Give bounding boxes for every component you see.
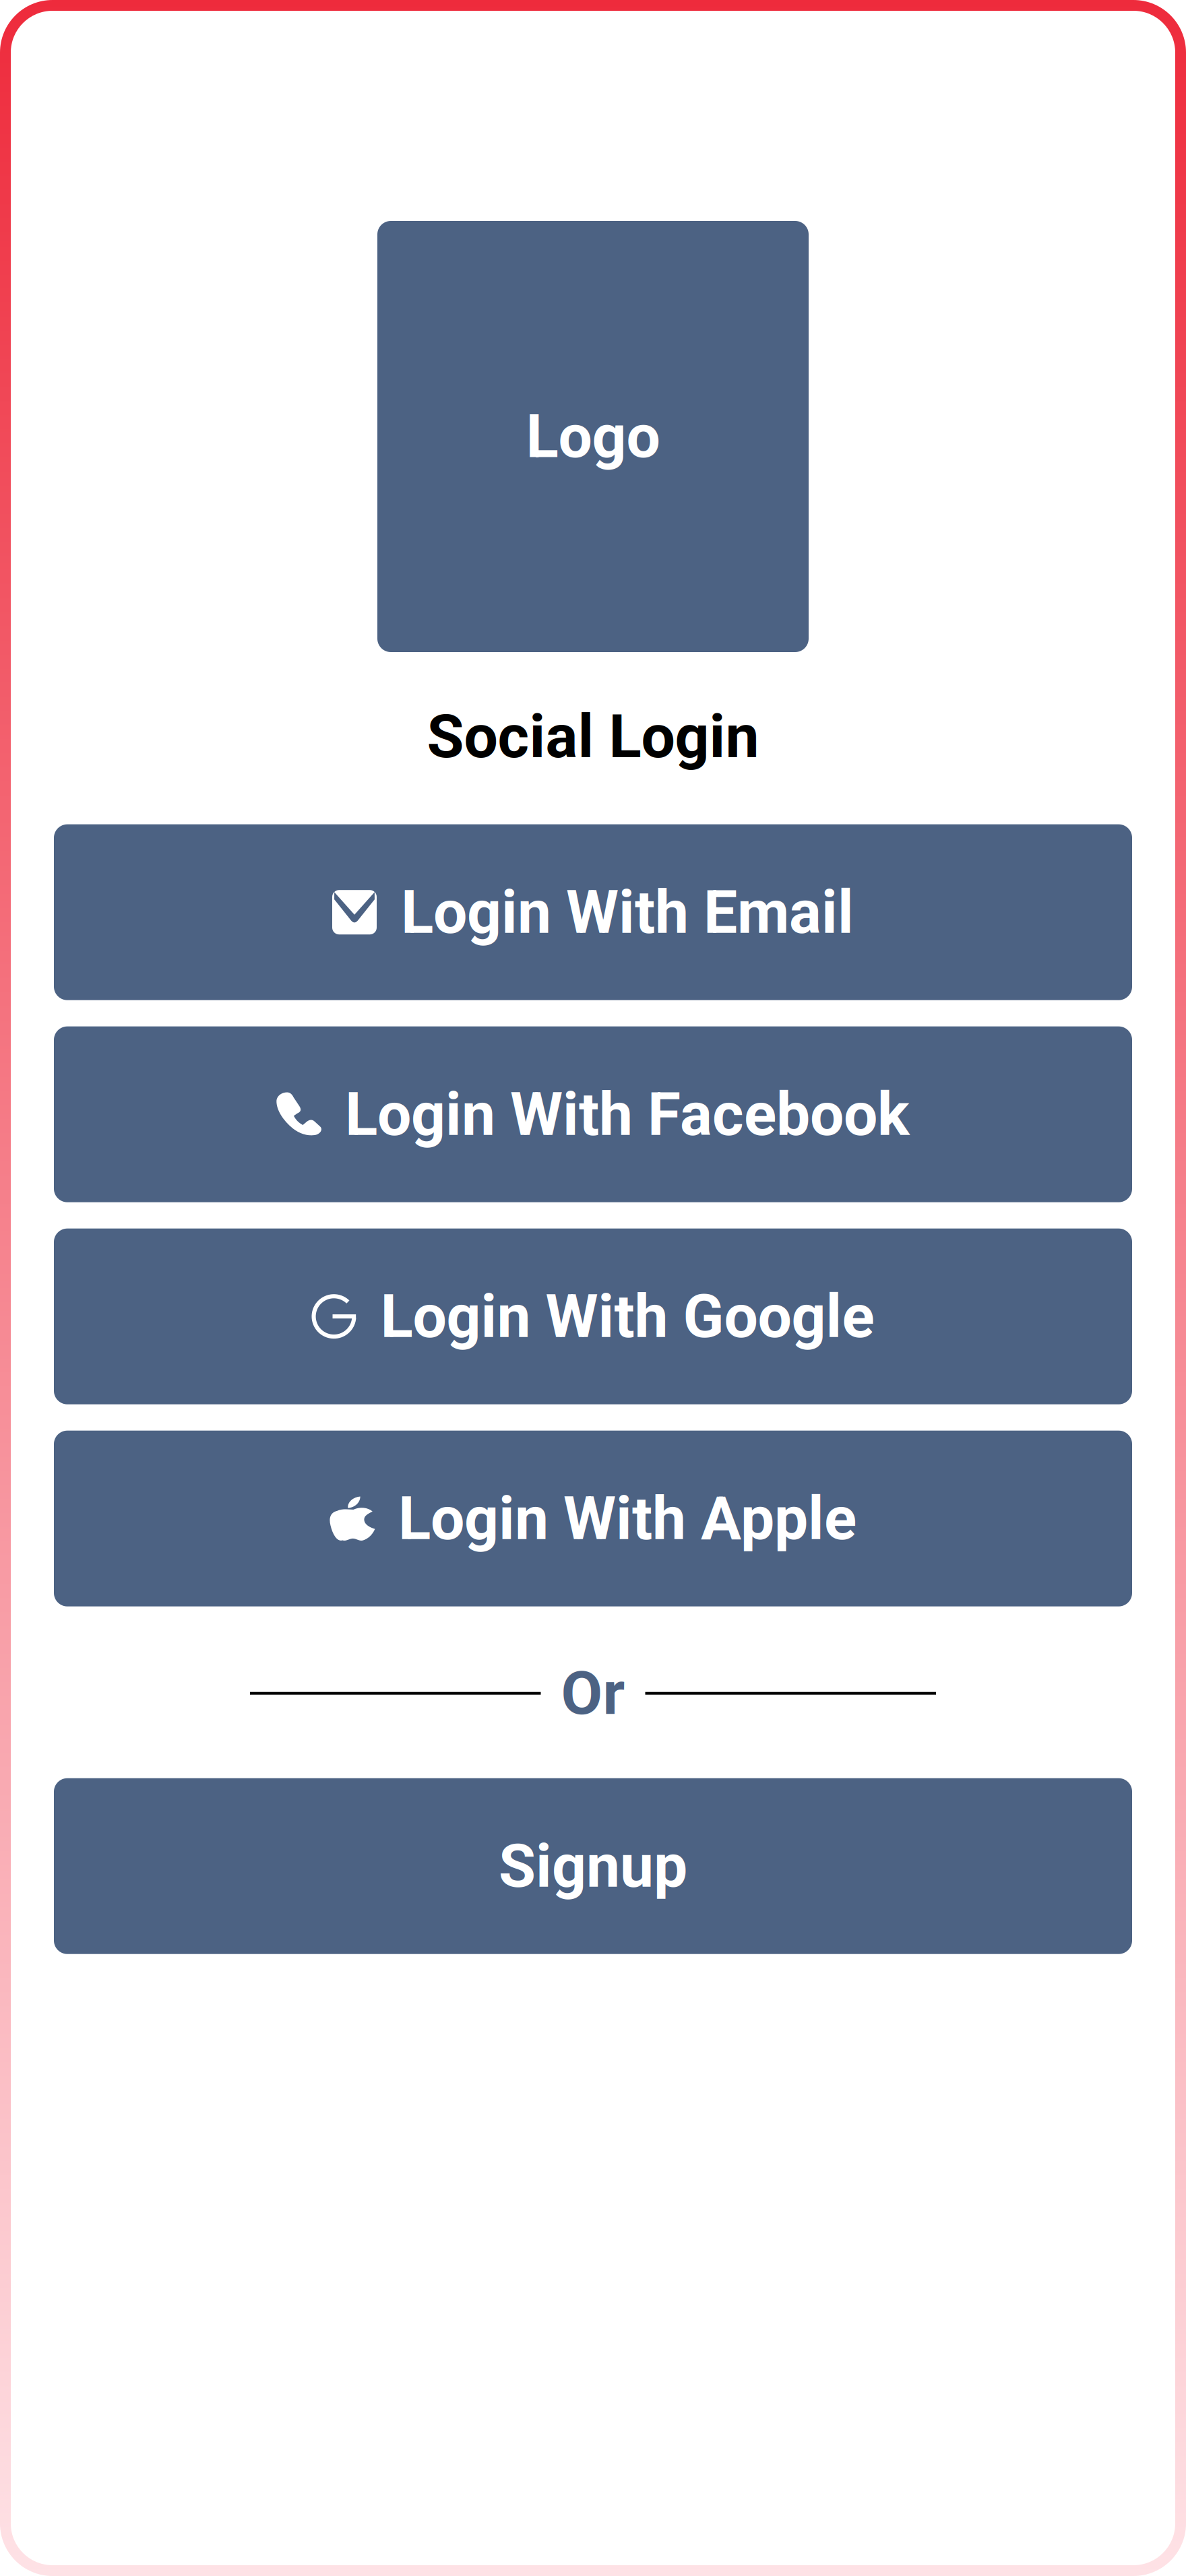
- staticText: Or: [561, 1658, 625, 1729]
- button[interactable]: Signup: [54, 1778, 1132, 1954]
- button[interactable]: Login With Apple: [54, 1431, 1132, 1606]
- staticText: Login With Apple: [398, 1483, 856, 1554]
- staticText: Logo: [526, 401, 660, 472]
- staticText: Signup: [499, 1831, 687, 1901]
- staticText: Login With Email: [401, 877, 854, 947]
- staticText: Social Login: [427, 701, 759, 772]
- staticText: Login With Google: [380, 1281, 874, 1352]
- button[interactable]: Login With Facebook: [54, 1026, 1132, 1202]
- button[interactable]: Login With Google: [54, 1229, 1132, 1404]
- button[interactable]: Login With Email: [54, 824, 1132, 1000]
- staticText: Login With Facebook: [345, 1079, 910, 1150]
